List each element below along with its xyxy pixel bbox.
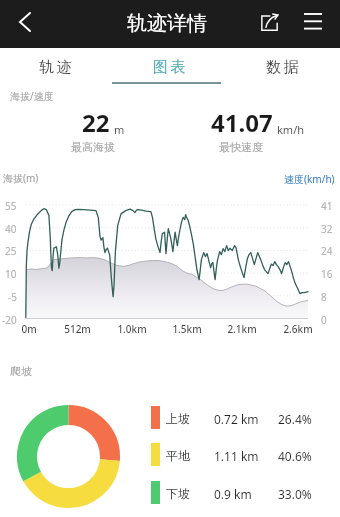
- staticText: 0.9 km: [214, 486, 252, 502]
- staticText: 16: [321, 267, 333, 279]
- staticText: 上坡: [166, 411, 190, 426]
- staticText: 40.6%: [278, 448, 312, 464]
- staticText: 爬坡: [10, 364, 32, 378]
- button[interactable]: Menu: [296, 4, 330, 38]
- button[interactable]: Share: [252, 5, 286, 39]
- staticText: 数据: [266, 58, 302, 77]
- staticText: 最高海拔: [71, 140, 115, 154]
- staticText: 1.11 km: [214, 448, 259, 464]
- staticText: 512m: [64, 322, 91, 335]
- staticText: 2.1km: [227, 322, 257, 335]
- staticText: 下坡: [166, 486, 190, 501]
- staticText: -20: [2, 313, 17, 325]
- staticText: 0: [321, 313, 327, 325]
- staticText: 25: [5, 244, 17, 256]
- staticText: 10: [5, 267, 17, 279]
- staticText: 22: [82, 106, 110, 139]
- button[interactable]: 数据: [227, 48, 340, 84]
- staticText: 轨迹: [39, 58, 75, 77]
- staticText: 8: [321, 290, 327, 302]
- staticText: 40: [5, 222, 17, 234]
- staticText: 26.4%: [278, 411, 312, 427]
- staticText: 2.6km: [283, 322, 313, 335]
- button[interactable]: 轨迹: [0, 48, 114, 84]
- staticText: 轨迹详情: [127, 11, 207, 36]
- staticText: 32: [321, 222, 333, 234]
- staticText: 1.0km: [117, 322, 147, 335]
- button[interactable]: Back: [7, 4, 43, 40]
- staticText: 0.72 km: [214, 411, 259, 427]
- staticText: -5: [8, 290, 17, 302]
- staticText: 图表: [153, 58, 189, 77]
- staticText: 55: [5, 199, 17, 211]
- staticText: km/h: [277, 122, 305, 137]
- button[interactable]: 上坡: [148, 403, 328, 431]
- staticText: 33.0%: [278, 486, 312, 502]
- button[interactable]: 平地: [148, 440, 328, 468]
- staticText: 0m: [21, 322, 37, 335]
- staticText: 平地: [166, 448, 190, 463]
- button[interactable]: 下坡: [148, 478, 328, 506]
- staticText: 海拔(m): [3, 171, 39, 185]
- staticText: 1.5km: [172, 322, 202, 335]
- staticText: 41: [321, 199, 333, 211]
- staticText: 海拔/速度: [10, 89, 54, 103]
- staticText: 速度(km/h): [284, 172, 335, 186]
- staticText: m: [114, 122, 125, 137]
- staticText: 41.07: [211, 106, 273, 139]
- staticText: 最快速度: [219, 140, 263, 154]
- staticText: 24: [321, 244, 333, 256]
- button[interactable]: 图表: [114, 48, 227, 84]
